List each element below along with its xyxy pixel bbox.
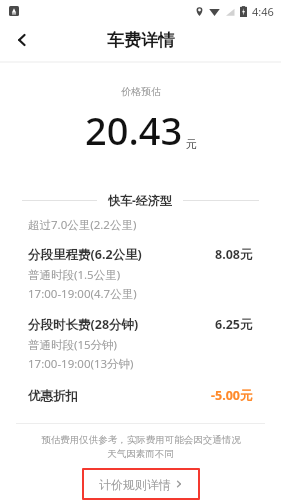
staticText: 分段里程费(6.2公里) bbox=[28, 246, 142, 263]
button[interactable]: 分段里程费(6.2公里) bbox=[0, 246, 281, 263]
button[interactable]: 计价规则详情 bbox=[82, 468, 200, 500]
staticText: 元 bbox=[186, 137, 197, 151]
staticText: 预估费用仅供参考，实际费用可能会因交通情况 bbox=[41, 434, 241, 446]
staticText: 17:00-19:00(4.7公里) bbox=[28, 286, 253, 302]
staticText: 天气因素而不同 bbox=[107, 448, 174, 460]
staticText: 超过7.0公里(2.2公里) bbox=[28, 217, 253, 233]
button[interactable]: 优惠折扣 bbox=[0, 387, 281, 404]
staticText: 17:00-19:00(13分钟) bbox=[28, 356, 253, 372]
staticText: 车费详情 bbox=[107, 30, 175, 51]
staticText: 优惠折扣 bbox=[28, 388, 78, 404]
staticText: 快车-经济型 bbox=[108, 192, 172, 208]
staticText: 价格预估 bbox=[121, 85, 161, 98]
staticText: 普通时段(15分钟) bbox=[28, 337, 253, 353]
staticText: 普通时段(1.5公里) bbox=[28, 267, 253, 283]
button[interactable]: Back bbox=[0, 22, 44, 58]
staticText: 分段时长费(28分钟) bbox=[28, 316, 139, 333]
button[interactable]: 分段时长费(28分钟) bbox=[0, 316, 281, 333]
staticText: 8.08元 bbox=[215, 246, 253, 263]
staticText: 20.43 bbox=[85, 104, 183, 156]
staticText: 4:46 bbox=[252, 4, 274, 19]
staticText: 计价规则详情 bbox=[99, 477, 171, 492]
staticText: 6.25元 bbox=[215, 316, 253, 333]
staticText: -5.00元 bbox=[211, 387, 253, 404]
